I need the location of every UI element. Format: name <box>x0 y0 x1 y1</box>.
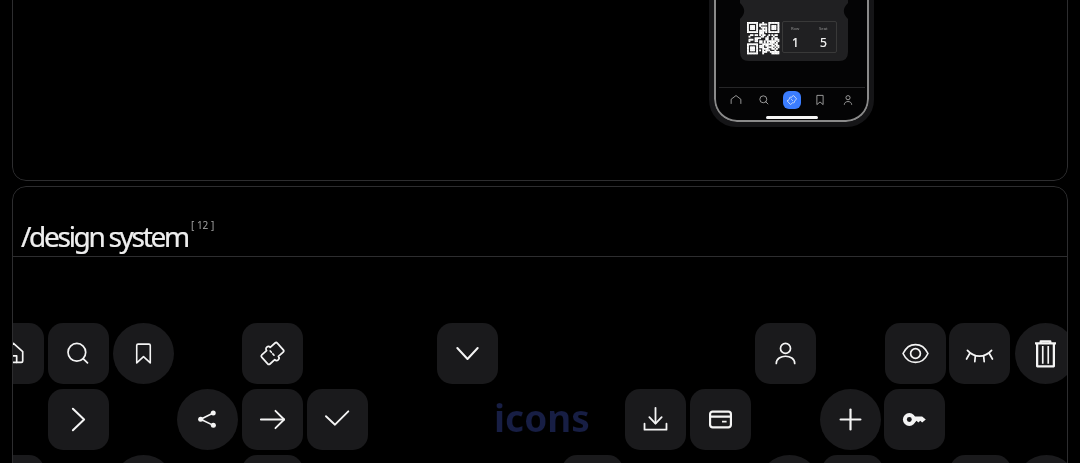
button[interactable]: Search <box>753 89 775 111</box>
button[interactable]: Bookmark <box>113 323 174 384</box>
button[interactable]: Profile <box>837 89 859 111</box>
button[interactable]: Forward <box>242 389 303 450</box>
button[interactable]: Tickets <box>783 91 801 109</box>
button[interactable]: Profile <box>755 323 816 384</box>
button[interactable]: Home <box>725 89 747 111</box>
button[interactable]: Show <box>885 323 946 384</box>
button[interactable]: Hide <box>949 323 1010 384</box>
button[interactable]: Filter <box>562 455 623 463</box>
button[interactable]: More <box>12 455 44 463</box>
button[interactable]: Link <box>1016 455 1068 463</box>
staticText: /design system <box>21 217 188 255</box>
button[interactable]: Delete <box>1015 323 1068 384</box>
button[interactable]: Share <box>177 389 238 450</box>
staticText: Row <box>791 26 800 32</box>
staticText: Seat <box>819 26 828 32</box>
button[interactable]: Notifications <box>822 455 883 463</box>
button[interactable]: Key <box>884 389 945 450</box>
button[interactable]: Search <box>48 323 109 384</box>
staticText: [ 12 ] <box>191 218 215 232</box>
button[interactable]: Calendar <box>242 455 303 463</box>
button[interactable]: Info <box>759 455 820 463</box>
button[interactable]: Card <box>690 389 751 450</box>
staticText: 5 <box>820 34 827 50</box>
button[interactable]: Location <box>113 455 174 463</box>
button[interactable]: Next <box>48 389 109 450</box>
button[interactable]: Ticket <box>242 323 303 384</box>
button[interactable]: Saved <box>809 89 831 111</box>
button[interactable]: Done <box>307 389 368 450</box>
button[interactable]: Expand <box>437 323 498 384</box>
button[interactable]: Download <box>625 389 686 450</box>
button[interactable]: Settings <box>950 455 1011 463</box>
staticText: icons <box>494 392 590 442</box>
button[interactable]: Add <box>820 389 881 450</box>
button[interactable]: Home <box>12 323 44 384</box>
staticText: 1 <box>792 34 799 50</box>
